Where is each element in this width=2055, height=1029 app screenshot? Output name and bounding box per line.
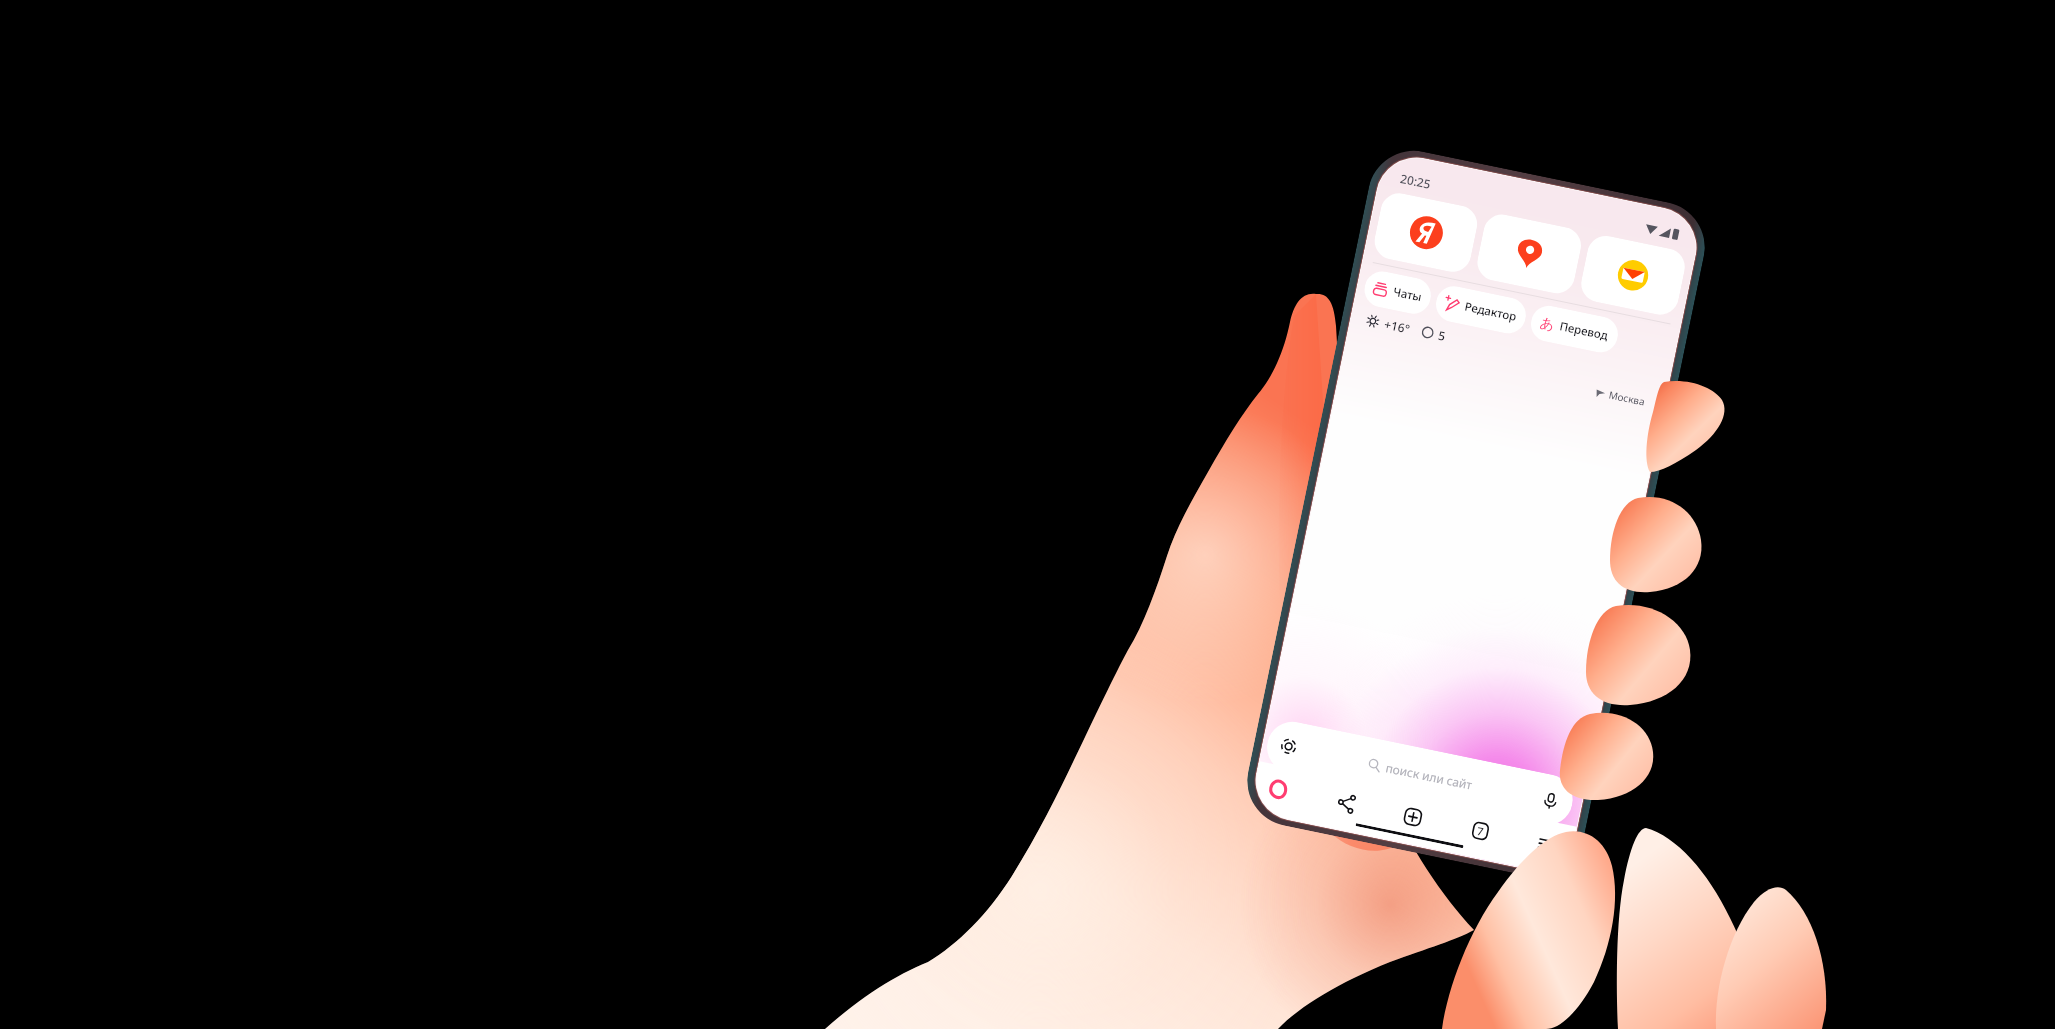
staticText: Чаты xyxy=(1392,284,1423,305)
button[interactable]: Чаты xyxy=(1361,268,1434,317)
staticText: Перевод xyxy=(1558,318,1610,344)
staticText: 7 xyxy=(1475,823,1485,839)
staticText: 20:25 xyxy=(1399,170,1432,192)
staticText: Редактор xyxy=(1463,299,1518,325)
button[interactable]: Карты xyxy=(1474,211,1584,297)
other: Поиск по картинке xyxy=(1277,735,1300,758)
button[interactable]: Редактор xyxy=(1433,283,1529,337)
button[interactable]: Яндекс xyxy=(1371,190,1481,275)
button[interactable]: Вкладки: 7 xyxy=(1459,809,1501,852)
staticText: 5 xyxy=(1437,327,1447,344)
staticText: поиск или сайт xyxy=(1384,759,1474,793)
button[interactable]: Почта xyxy=(1578,232,1688,318)
button[interactable]: Новая вкладка xyxy=(1391,795,1434,838)
button[interactable]: あ xyxy=(1528,303,1621,356)
button[interactable]: Поиск по картинке xyxy=(1262,717,1577,830)
button[interactable]: Поделиться xyxy=(1325,781,1367,824)
other: Голосовой поиск xyxy=(1541,791,1560,810)
button[interactable]: Алиса xyxy=(1257,767,1300,810)
staticText: あ xyxy=(1538,314,1556,333)
staticText: Москва xyxy=(1607,388,1647,409)
staticText: +16° xyxy=(1383,316,1412,337)
button[interactable]: Меню xyxy=(1525,823,1568,865)
